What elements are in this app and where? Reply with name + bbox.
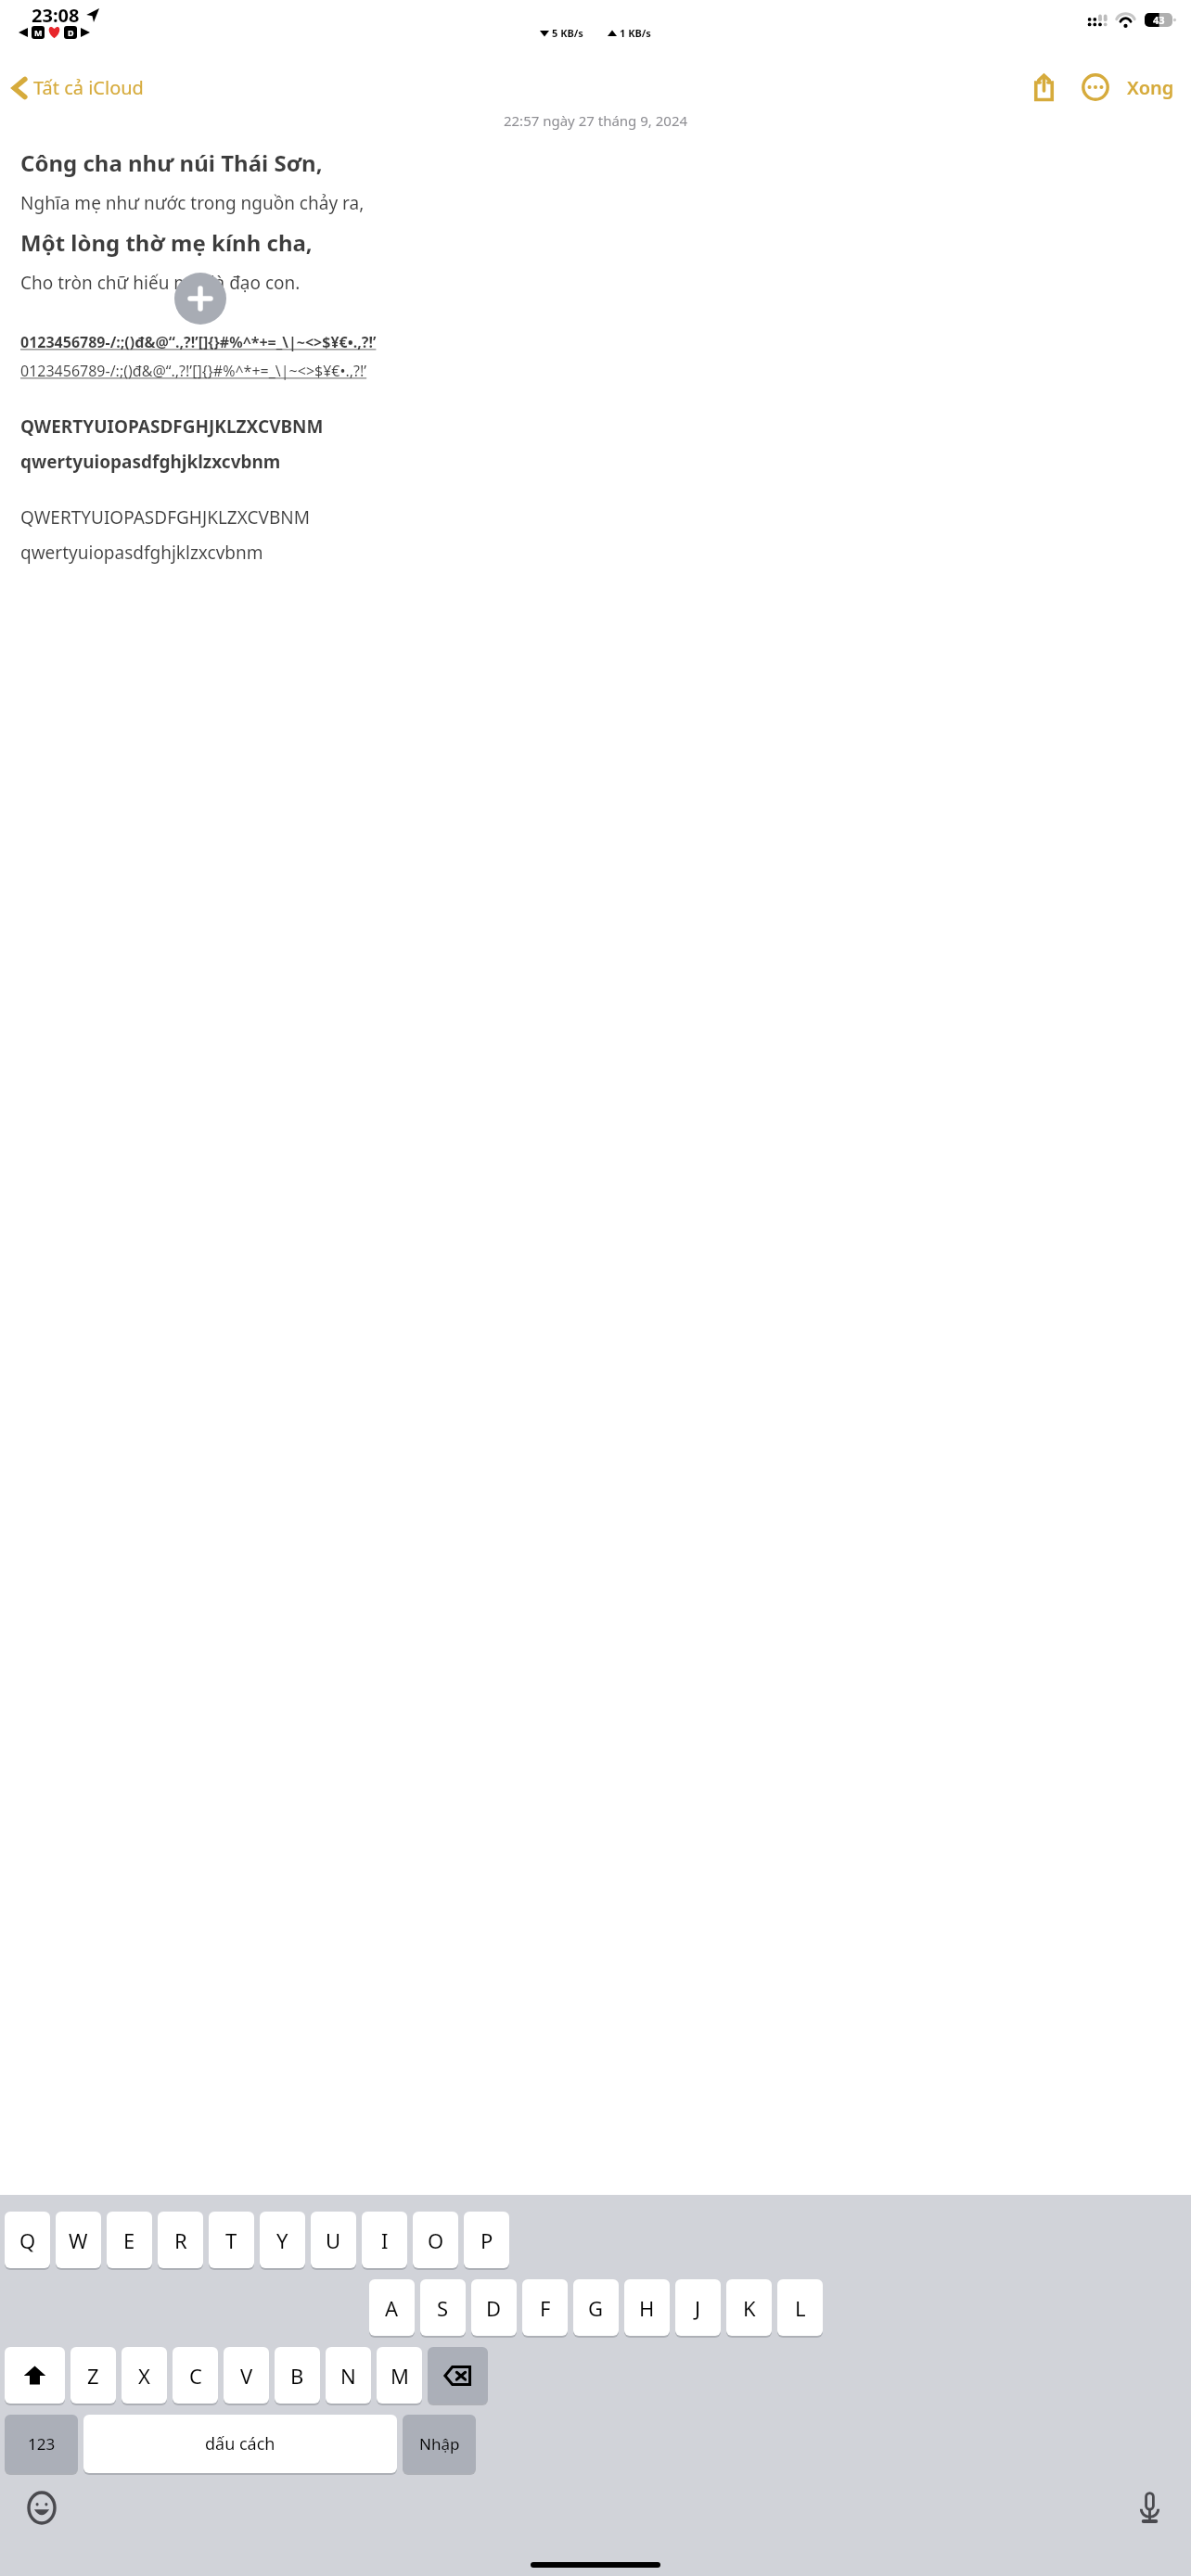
button[interactable]: Emoji xyxy=(22,2488,61,2527)
button[interactable]: dấu cách xyxy=(83,2415,397,2475)
staticText: V xyxy=(240,2362,253,2390)
staticText: X xyxy=(138,2362,150,2390)
staticText: 0123456789-/:;()đ&@“.,?!’[]{}#%^*+=_\|~<… xyxy=(20,332,377,352)
button[interactable]: Q xyxy=(5,2212,50,2270)
staticText: G xyxy=(588,2294,604,2322)
staticText: P xyxy=(480,2226,493,2254)
staticText: Công cha như núi Thái Sơn, xyxy=(20,147,323,178)
staticText: 0123456789-/:;()đ&@“.,?!’[]{}#%^*+=_\|~<… xyxy=(20,361,367,381)
button[interactable]: I xyxy=(362,2212,407,2270)
button[interactable]: F xyxy=(522,2279,568,2338)
staticText: M xyxy=(391,2362,409,2390)
staticText: U xyxy=(326,2226,341,2254)
button[interactable]: C xyxy=(173,2347,218,2405)
staticText: A xyxy=(385,2294,399,2322)
staticText: H xyxy=(639,2294,655,2322)
staticText: B xyxy=(290,2362,304,2390)
button[interactable]: W xyxy=(56,2212,101,2270)
button[interactable]: A xyxy=(369,2279,415,2338)
staticText: D xyxy=(486,2294,502,2322)
staticText: QWERTYUIOPASDFGHJKLZXCVBNM xyxy=(20,505,310,529)
staticText: Một lòng thờ mẹ kính cha, xyxy=(20,227,313,258)
button[interactable]: M xyxy=(377,2347,422,2405)
staticText: 1 KB/s xyxy=(620,26,651,40)
button[interactable]: G xyxy=(573,2279,619,2338)
staticText: Cho tròn chữ hiếu mới là đạo con. xyxy=(20,271,301,295)
staticText: M xyxy=(34,27,43,38)
staticText: L xyxy=(795,2294,806,2322)
button[interactable]: N xyxy=(326,2347,371,2405)
staticText: R xyxy=(174,2226,187,2254)
button[interactable]: Nhập xyxy=(403,2415,476,2475)
button[interactable]: Tất cả iCloud xyxy=(11,70,146,106)
staticText: QWERTYUIOPASDFGHJKLZXCVBNM xyxy=(20,414,324,439)
button[interactable]: More options xyxy=(1075,67,1116,108)
staticText: J xyxy=(695,2294,701,2322)
button[interactable]: 123 xyxy=(5,2415,78,2475)
button[interactable]: E xyxy=(107,2212,152,2270)
staticText: dấu cách xyxy=(205,2432,275,2455)
button[interactable]: P xyxy=(464,2212,509,2270)
staticText: W xyxy=(69,2226,88,2254)
staticText: qwertyuiopasdfghjklzxcvbnm xyxy=(20,541,263,565)
staticText: Tất cả iCloud xyxy=(33,75,144,100)
button[interactable]: K xyxy=(726,2279,772,2338)
staticText: 22:57 ngày 27 tháng 9, 2024 xyxy=(20,111,1171,130)
staticText: I xyxy=(381,2226,389,2254)
button[interactable]: J xyxy=(675,2279,721,2338)
staticText: Z xyxy=(87,2362,99,2390)
button[interactable]: V xyxy=(224,2347,269,2405)
staticText: 43 xyxy=(1153,13,1165,27)
button[interactable]: T xyxy=(209,2212,254,2270)
staticText: T xyxy=(225,2226,237,2254)
staticText: O xyxy=(428,2226,444,2254)
staticText: Y xyxy=(276,2226,288,2254)
staticText: 123 xyxy=(28,2433,56,2455)
staticText: F xyxy=(540,2294,551,2322)
staticText: N xyxy=(340,2362,356,2390)
staticText: Nghĩa mẹ như nước trong nguồn chảy ra, xyxy=(20,191,365,215)
staticText: Nhập xyxy=(419,2433,460,2455)
button[interactable]: Backspace xyxy=(428,2347,488,2405)
button[interactable]: Z xyxy=(70,2347,116,2405)
staticText: qwertyuiopasdfghjklzxcvbnm xyxy=(20,450,281,474)
button[interactable]: S xyxy=(420,2279,466,2338)
button[interactable]: R xyxy=(158,2212,203,2270)
staticText: S xyxy=(437,2294,449,2322)
staticText: C xyxy=(189,2362,202,2390)
button[interactable]: Dictation xyxy=(1130,2488,1169,2527)
button[interactable]: D xyxy=(471,2279,517,2338)
button[interactable]: H xyxy=(624,2279,670,2338)
button[interactable]: Add attachment xyxy=(174,273,226,325)
button[interactable]: X xyxy=(122,2347,167,2405)
staticText: D xyxy=(68,27,74,38)
staticText: 23:08 xyxy=(32,3,80,28)
button[interactable]: Xong xyxy=(1123,68,1178,108)
button[interactable]: O xyxy=(413,2212,458,2270)
staticText: Q xyxy=(19,2226,36,2254)
staticText: Xong xyxy=(1127,75,1174,100)
staticText: K xyxy=(743,2294,756,2322)
button[interactable]: Shift xyxy=(5,2347,65,2405)
button[interactable]: L xyxy=(777,2279,823,2338)
button[interactable]: B xyxy=(275,2347,320,2405)
button[interactable]: Y xyxy=(260,2212,305,2270)
staticText: E xyxy=(123,2226,135,2254)
staticText: 5 KB/s xyxy=(552,26,583,40)
button[interactable]: U xyxy=(311,2212,356,2270)
button[interactable]: Share xyxy=(1023,67,1064,108)
